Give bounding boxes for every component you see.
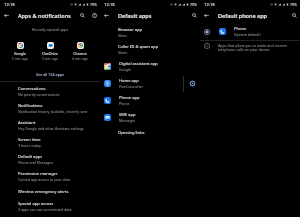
staticText: Google bbox=[119, 67, 131, 72]
staticText: 2 apps can use unrestricted data bbox=[18, 207, 72, 212]
staticText: Home app bbox=[119, 78, 139, 83]
button[interactable]: Help bbox=[88, 9, 100, 21]
staticText: No priority conversations bbox=[18, 92, 60, 97]
staticText: 79% bbox=[290, 2, 297, 7]
staticText: 79% bbox=[90, 2, 97, 7]
button[interactable]: OneDrive bbox=[35, 42, 65, 61]
staticText: Google bbox=[14, 51, 26, 56]
button[interactable]: Notifications bbox=[0, 100, 100, 117]
button[interactable]: Screen time bbox=[0, 134, 100, 151]
button[interactable]: Digital assistant app bbox=[100, 58, 200, 75]
staticText: 4 min. ago bbox=[72, 57, 88, 61]
staticText: 3 min. ago bbox=[42, 57, 58, 61]
button[interactable]: See all 164 apps bbox=[0, 70, 100, 79]
staticText: Digital assistant app bbox=[119, 61, 158, 66]
staticText: 3 hours today bbox=[18, 143, 41, 148]
button[interactable]: Opening links bbox=[100, 126, 200, 139]
button[interactable]: Wireless emergency alerts bbox=[0, 185, 100, 198]
staticText: Default phone app bbox=[218, 12, 267, 19]
button[interactable]: Permission manager bbox=[0, 168, 100, 185]
staticText: Apps that allow you to make and receive … bbox=[218, 43, 299, 53]
staticText: See all 164 apps bbox=[36, 72, 65, 77]
staticText: Screen time bbox=[18, 137, 41, 142]
staticText: 12:18 bbox=[204, 2, 215, 8]
staticText: Caller ID & spam app bbox=[118, 44, 159, 49]
button[interactable]: Home app settings bbox=[184, 75, 200, 92]
button[interactable]: Assistant bbox=[0, 117, 100, 134]
button[interactable]: Search bbox=[188, 9, 200, 21]
staticText: Assistant bbox=[18, 120, 36, 125]
button[interactable]: Conversations bbox=[0, 83, 100, 100]
staticText: Browser app bbox=[118, 27, 143, 32]
button[interactable]: Special app access bbox=[0, 198, 100, 215]
button[interactable]: Search bbox=[288, 9, 300, 21]
button[interactable]: SMS app bbox=[100, 109, 200, 126]
staticText: Permission manager bbox=[18, 171, 58, 176]
button[interactable]: Phone bbox=[200, 24, 300, 39]
staticText: Hey Google and other Assistant settings bbox=[18, 126, 84, 131]
staticText: SMS app bbox=[119, 112, 136, 117]
button[interactable]: Back bbox=[100, 9, 112, 21]
button[interactable]: Home app bbox=[100, 75, 200, 92]
staticText: Pixel Launcher bbox=[119, 84, 143, 89]
staticText: Special app access bbox=[18, 201, 54, 206]
staticText: Phone and Messages bbox=[18, 160, 53, 165]
staticText: OneDrive bbox=[42, 51, 58, 56]
staticText: Default apps bbox=[18, 154, 43, 159]
button[interactable]: Back bbox=[200, 9, 212, 21]
staticText: None bbox=[118, 33, 127, 38]
button[interactable]: Default apps bbox=[0, 151, 100, 168]
staticText: Notifications bbox=[18, 103, 43, 108]
staticText: Chrome bbox=[73, 51, 87, 56]
button[interactable]: Search bbox=[76, 9, 88, 21]
button[interactable]: Phone app bbox=[100, 92, 200, 109]
staticText: Notification history, bubbles, recently … bbox=[18, 109, 88, 114]
staticText: Phone bbox=[119, 101, 130, 106]
staticText: 5 min. ago bbox=[12, 57, 28, 61]
staticText: Opening links bbox=[118, 130, 145, 135]
staticText: Phone bbox=[234, 26, 247, 31]
button[interactable]: Browser app bbox=[100, 24, 200, 41]
staticText: 79% bbox=[190, 2, 197, 7]
staticText: Recently opened apps bbox=[0, 27, 100, 32]
button[interactable]: Caller ID & spam app bbox=[100, 41, 200, 58]
staticText: Default apps bbox=[118, 12, 152, 19]
staticText: 12:18 bbox=[4, 2, 15, 8]
button[interactable]: Back bbox=[0, 9, 12, 21]
staticText: Phone app bbox=[119, 95, 140, 100]
button[interactable]: Chrome bbox=[65, 42, 95, 61]
staticText: Messages bbox=[119, 118, 136, 123]
staticText: (System default) bbox=[234, 32, 261, 37]
staticText: Conversations bbox=[18, 86, 46, 91]
button[interactable]: Google bbox=[5, 42, 35, 61]
staticText: Apps & notifications bbox=[18, 12, 71, 19]
staticText: 12:18 bbox=[104, 2, 115, 8]
staticText: Wireless emergency alerts bbox=[18, 189, 69, 194]
staticText: None bbox=[118, 50, 127, 55]
staticText: Control app access to your data bbox=[18, 177, 70, 182]
